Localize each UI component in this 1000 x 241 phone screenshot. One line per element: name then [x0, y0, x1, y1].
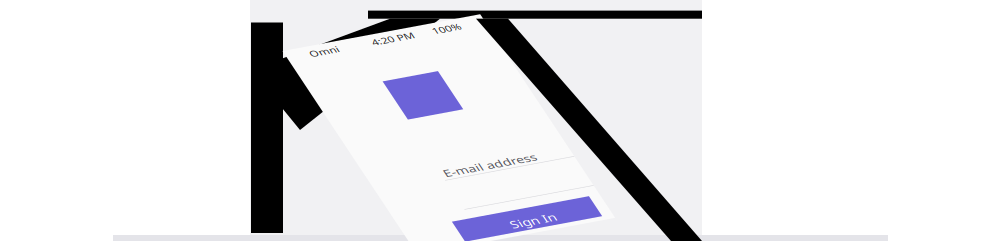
staticText: 100%	[275, 6, 329, 34]
